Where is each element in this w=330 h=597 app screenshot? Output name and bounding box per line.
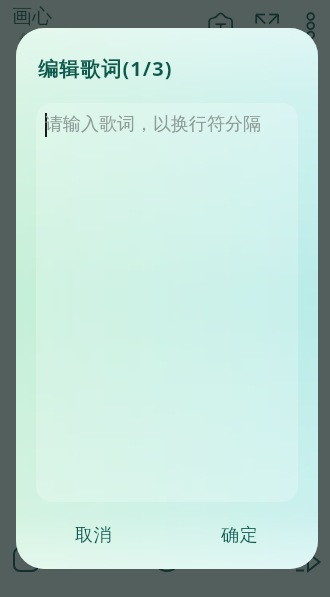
button[interactable]: 请输入歌词，以换行符分隔 <box>36 103 298 502</box>
staticText: 取消 <box>75 524 113 547</box>
button[interactable]: Home <box>151 543 183 575</box>
button[interactable]: 取消 <box>21 502 167 569</box>
button[interactable]: Sleep timer <box>205 7 237 39</box>
staticText: 编辑歌词(1/3) <box>38 55 173 82</box>
button[interactable]: Back <box>294 546 326 578</box>
staticText: 请输入歌词，以换行符分隔 <box>45 113 261 136</box>
staticText: 《画心》- 张靓颖 <box>11 29 125 49</box>
button[interactable]: Recents <box>10 544 42 576</box>
button[interactable]: More options <box>300 4 324 28</box>
button[interactable]: 确定 <box>167 502 313 569</box>
button[interactable]: Fullscreen <box>252 5 282 35</box>
staticText: 画心 <box>12 4 52 29</box>
staticText: 确定 <box>221 524 259 547</box>
